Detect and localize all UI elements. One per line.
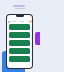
button[interactable]	[9, 24, 30, 30]
button[interactable]: Profile	[29, 20, 32, 23]
button[interactable]	[9, 48, 30, 54]
button[interactable]	[9, 32, 30, 38]
button[interactable]	[9, 40, 30, 46]
button[interactable]	[9, 56, 30, 62]
